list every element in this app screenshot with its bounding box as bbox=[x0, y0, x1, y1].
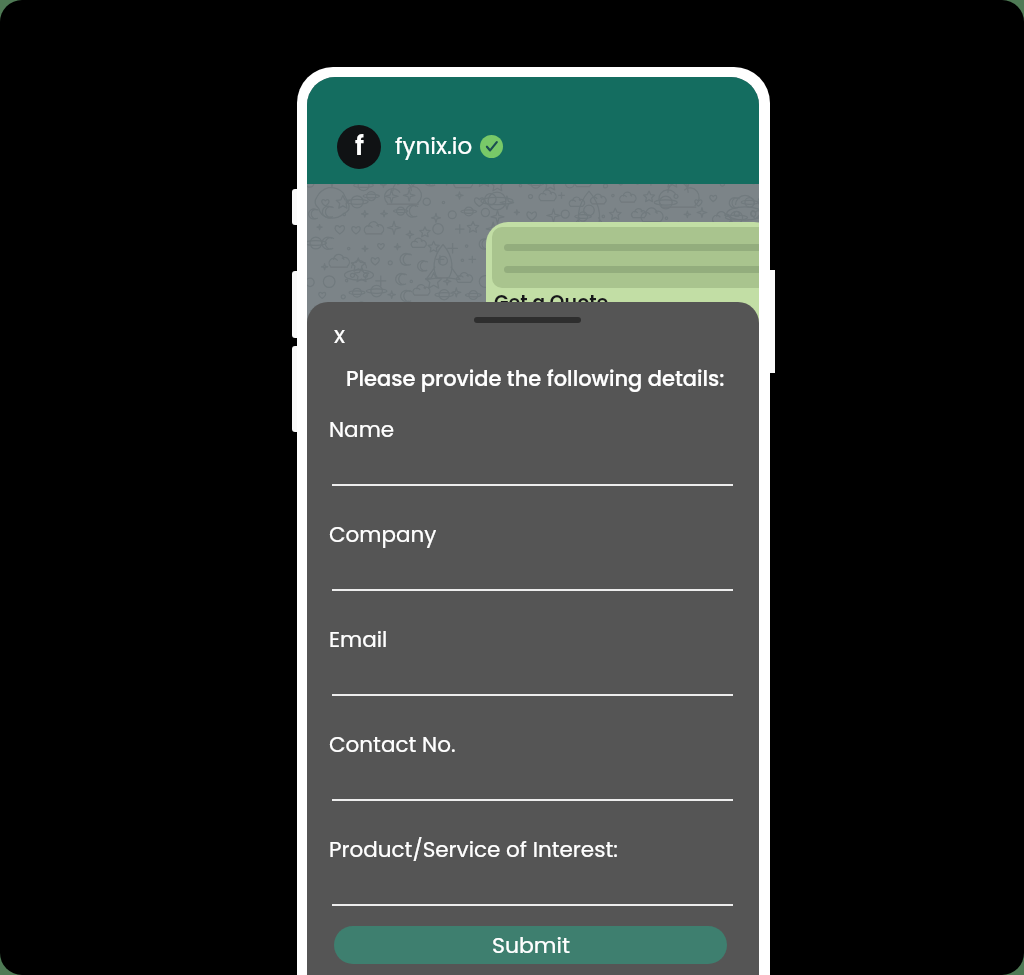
staticText: Name bbox=[329, 414, 395, 444]
button[interactable]: fynix.io bbox=[395, 125, 503, 169]
staticText: fynix.io bbox=[395, 130, 473, 162]
staticText: Contact No. bbox=[329, 729, 456, 759]
staticText: Email bbox=[329, 624, 388, 654]
button[interactable]: Product/Service of Interest: bbox=[329, 826, 733, 908]
staticText: Please provide the following details: bbox=[346, 364, 725, 393]
staticText: Company bbox=[329, 519, 437, 549]
button[interactable]: Get a Quote bbox=[486, 222, 759, 402]
staticText: Product/Service of Interest: bbox=[329, 834, 618, 864]
button[interactable]: fynix.io page avatar bbox=[337, 125, 381, 169]
button[interactable]: Company bbox=[329, 511, 733, 593]
button[interactable]: Name bbox=[329, 406, 733, 488]
button[interactable]: Email bbox=[329, 616, 733, 698]
button[interactable]: Submit bbox=[334, 926, 727, 964]
staticText: x bbox=[334, 319, 346, 351]
button[interactable]: Contact No. bbox=[329, 721, 733, 803]
staticText: Get a Quote bbox=[494, 289, 609, 316]
staticText: f bbox=[355, 128, 364, 164]
staticText: Submit bbox=[492, 930, 570, 961]
button[interactable]: Close bbox=[322, 317, 358, 353]
